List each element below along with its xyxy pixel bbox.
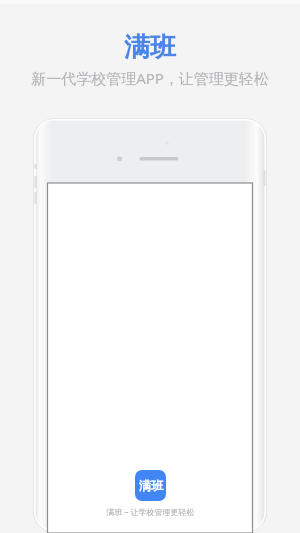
staticText: 新一代学校管理APP，让管理更轻松 (31, 68, 269, 88)
button[interactable]: 满班 应用图标 (135, 470, 166, 501)
staticText: 满班 (124, 31, 176, 64)
staticText: 满班 – 让学校管理更轻松 (106, 506, 195, 517)
staticText: 满班 (139, 478, 163, 493)
